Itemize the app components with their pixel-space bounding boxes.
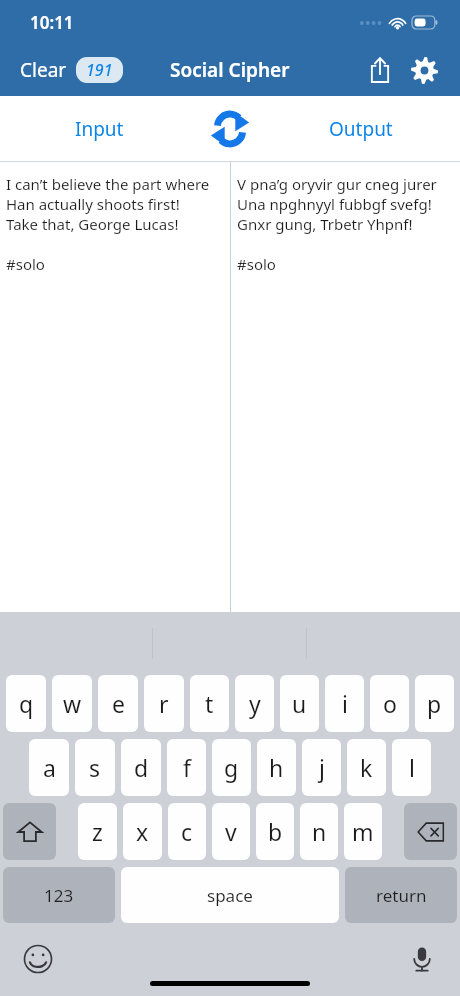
staticText: I can’t believe the part where — [6, 174, 210, 194]
staticText: y — [249, 688, 261, 719]
staticText: Clear — [20, 57, 67, 83]
staticText: #solo — [237, 254, 276, 274]
button[interactable]: n — [300, 803, 338, 860]
staticText: k — [360, 752, 373, 783]
staticText: d — [134, 752, 149, 783]
staticText: Gnxr gung, Trbetr Yhpnf! — [237, 214, 413, 234]
staticText: Han actually shoots first! — [6, 194, 180, 214]
staticText: l — [409, 752, 415, 783]
button[interactable]: u — [280, 675, 319, 732]
button[interactable]: space — [121, 867, 339, 923]
button[interactable]: y — [235, 675, 274, 732]
staticText: c — [181, 816, 193, 847]
staticText: 123 — [44, 884, 74, 907]
staticText: w — [63, 688, 82, 719]
button[interactable]: d — [121, 739, 161, 796]
staticText: b — [268, 816, 283, 847]
button[interactable]: Delete — [404, 803, 457, 860]
staticText: o — [383, 688, 397, 719]
button[interactable]: x — [123, 803, 162, 860]
button[interactable]: Shift — [3, 803, 56, 860]
button[interactable]: w — [52, 675, 92, 732]
staticText: p — [427, 688, 442, 719]
button[interactable]: h — [257, 739, 296, 796]
button[interactable]: r — [144, 675, 184, 732]
staticText: t — [205, 688, 214, 719]
staticText: a — [43, 752, 56, 783]
staticText: n — [312, 816, 327, 847]
button[interactable]: o — [370, 675, 409, 732]
staticText: s — [89, 752, 101, 783]
staticText: f — [183, 752, 191, 783]
staticText: Take that, George Lucas! — [6, 214, 179, 234]
button[interactable]: Clear — [20, 57, 123, 83]
button[interactable]: Input — [0, 96, 198, 161]
button[interactable]: q — [6, 675, 46, 732]
staticText: #solo — [6, 254, 45, 274]
button[interactable]: k — [347, 739, 386, 796]
staticText: g — [224, 752, 239, 783]
button[interactable]: v — [212, 803, 250, 860]
staticText: h — [269, 752, 284, 783]
staticText: return — [376, 884, 427, 907]
staticText: Output — [329, 116, 393, 142]
button[interactable]: z — [78, 803, 117, 860]
button[interactable]: t — [190, 675, 229, 732]
staticText: V pna’g oryvir gur cneg jurer — [237, 174, 437, 194]
button[interactable]: l — [392, 739, 431, 796]
staticText: 10:11 — [30, 11, 74, 34]
staticText: z — [92, 816, 103, 847]
staticText: m — [352, 816, 374, 847]
button[interactable]: b — [256, 803, 294, 860]
button[interactable]: Dictation — [400, 937, 444, 981]
button[interactable]: 123 — [3, 867, 115, 923]
staticText: r — [159, 688, 169, 719]
button[interactable]: j — [302, 739, 341, 796]
button[interactable]: p — [415, 675, 454, 732]
button[interactable]: a — [29, 739, 69, 796]
button[interactable]: g — [212, 739, 251, 796]
staticText: u — [292, 688, 307, 719]
staticText: v — [225, 816, 237, 847]
button[interactable]: f — [167, 739, 206, 796]
button[interactable]: c — [168, 803, 206, 860]
button[interactable]: I can’t believe the part where — [6, 174, 226, 613]
staticText: j — [319, 752, 325, 783]
button[interactable]: m — [344, 803, 382, 860]
button[interactable]: e — [98, 675, 138, 732]
button[interactable]: Output — [262, 96, 460, 161]
staticText: q — [19, 688, 34, 719]
button[interactable]: s — [75, 739, 115, 796]
staticText: Social Cipher — [170, 57, 290, 83]
button[interactable]: Share — [358, 48, 402, 92]
staticText: space — [207, 884, 253, 907]
button[interactable]: i — [325, 675, 364, 732]
staticText: x — [136, 816, 149, 847]
staticText: 191 — [86, 59, 113, 81]
staticText: Input — [75, 116, 124, 142]
staticText: e — [112, 688, 125, 719]
button[interactable]: Emoji — [16, 937, 60, 981]
button[interactable]: return — [345, 867, 457, 923]
staticText: Una npghnyyl fubbgf svefg! — [237, 194, 432, 214]
button[interactable]: V pna’g oryvir gur cneg jurer — [237, 174, 456, 613]
button[interactable]: Swap — [198, 96, 262, 161]
staticText: i — [342, 688, 348, 719]
button[interactable]: Settings — [402, 48, 446, 92]
